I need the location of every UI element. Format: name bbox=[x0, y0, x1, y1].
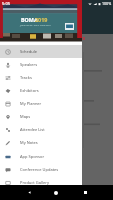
button[interactable]: App Sponsor bbox=[0, 150, 82, 163]
staticText: Conference Updates bbox=[20, 167, 59, 172]
staticText: JUNE 22-25 SALT LAKE CITY bbox=[20, 23, 51, 26]
button[interactable]: Product Gallery bbox=[0, 176, 82, 189]
staticText: 100% bbox=[102, 1, 112, 6]
button[interactable]: My Notes bbox=[0, 136, 82, 149]
staticText: My Notes bbox=[20, 140, 38, 145]
button[interactable]: Conference Updates bbox=[0, 163, 82, 176]
button[interactable]: Maps bbox=[0, 110, 82, 123]
staticText: Attendee List bbox=[20, 127, 45, 132]
staticText: Tracks bbox=[20, 75, 32, 80]
button[interactable]: Attendee List bbox=[0, 123, 82, 136]
button[interactable]: Home bbox=[50, 185, 62, 200]
button[interactable]: Exhibitors bbox=[0, 84, 82, 97]
staticText: 2019 bbox=[35, 16, 48, 23]
button[interactable]: Tracks bbox=[0, 71, 82, 84]
staticText: BOMA bbox=[21, 16, 38, 23]
button[interactable]: My Planner bbox=[0, 97, 82, 110]
staticText: Speakers bbox=[20, 62, 38, 67]
staticText: App Sponsor bbox=[20, 154, 45, 159]
button[interactable]: Recent apps bbox=[79, 185, 91, 200]
staticText: Maps bbox=[20, 114, 31, 119]
staticText: Exhibitors bbox=[20, 88, 39, 93]
button[interactable]: Back bbox=[23, 185, 35, 200]
button[interactable]: Speakers bbox=[0, 58, 82, 71]
staticText: Product Gallery bbox=[20, 180, 49, 185]
staticText: Schedule bbox=[20, 49, 38, 54]
staticText: 5:05 bbox=[2, 1, 10, 6]
button[interactable]: Schedule bbox=[0, 45, 82, 58]
staticText: My Planner bbox=[20, 101, 42, 106]
